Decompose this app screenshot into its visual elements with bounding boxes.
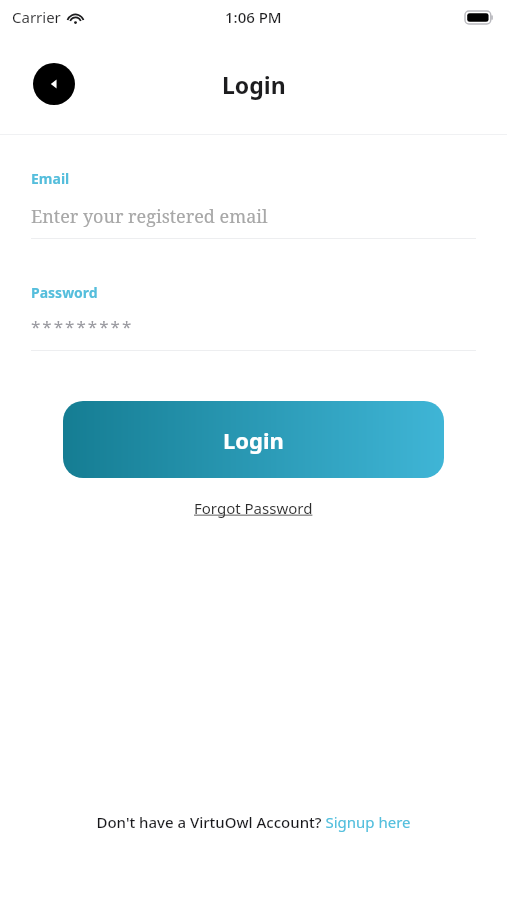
button[interactable]: Back bbox=[33, 63, 75, 105]
staticText: Login bbox=[222, 69, 286, 100]
staticText: Forgot Password bbox=[194, 498, 313, 518]
staticText: Enter your registered email bbox=[31, 204, 268, 229]
button[interactable]: Enter your registered email bbox=[31, 202, 476, 230]
staticText: Email bbox=[31, 169, 70, 188]
staticText: ********* bbox=[31, 315, 134, 338]
staticText: Password bbox=[31, 283, 98, 302]
staticText: Carrier bbox=[12, 7, 61, 27]
button[interactable]: Forgot Password bbox=[186, 494, 321, 522]
staticText: Don't have a VirtuOwl Account? Signup he… bbox=[96, 812, 411, 832]
button[interactable]: ********* bbox=[31, 314, 476, 338]
button[interactable]: Login bbox=[63, 401, 444, 478]
staticText: 1:06 PM bbox=[225, 7, 282, 27]
staticText: Login bbox=[223, 425, 284, 455]
button[interactable]: Don't have a VirtuOwl Account? Signup he… bbox=[96, 812, 411, 832]
